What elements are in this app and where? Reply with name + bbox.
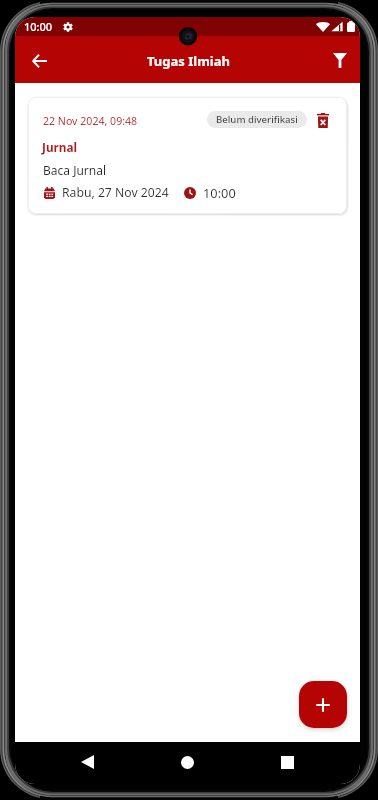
button[interactable]: Belum diverifikasi <box>207 111 307 128</box>
button[interactable]: 22 Nov 2024, 09:48 <box>28 97 347 214</box>
button[interactable]: Recents <box>267 742 307 782</box>
staticText: 22 Nov 2024, 09:48 <box>43 114 138 128</box>
button[interactable]: Delete <box>314 111 332 129</box>
staticText: Baca Jurnal <box>43 162 107 178</box>
button[interactable]: Home <box>167 742 207 782</box>
staticText: Rabu, 27 Nov 2024 <box>62 184 169 201</box>
staticText: 10:00 <box>203 184 236 201</box>
button[interactable]: Filter <box>323 43 357 77</box>
button[interactable]: Back <box>20 42 58 80</box>
staticText: Tugas Ilmiah <box>147 52 230 70</box>
button[interactable]: Back <box>67 742 107 782</box>
staticText: 10:00 <box>24 19 53 34</box>
staticText: Jurnal <box>42 139 78 155</box>
button[interactable]: Add <box>299 681 347 728</box>
staticText: Belum diverifikasi <box>216 113 298 126</box>
